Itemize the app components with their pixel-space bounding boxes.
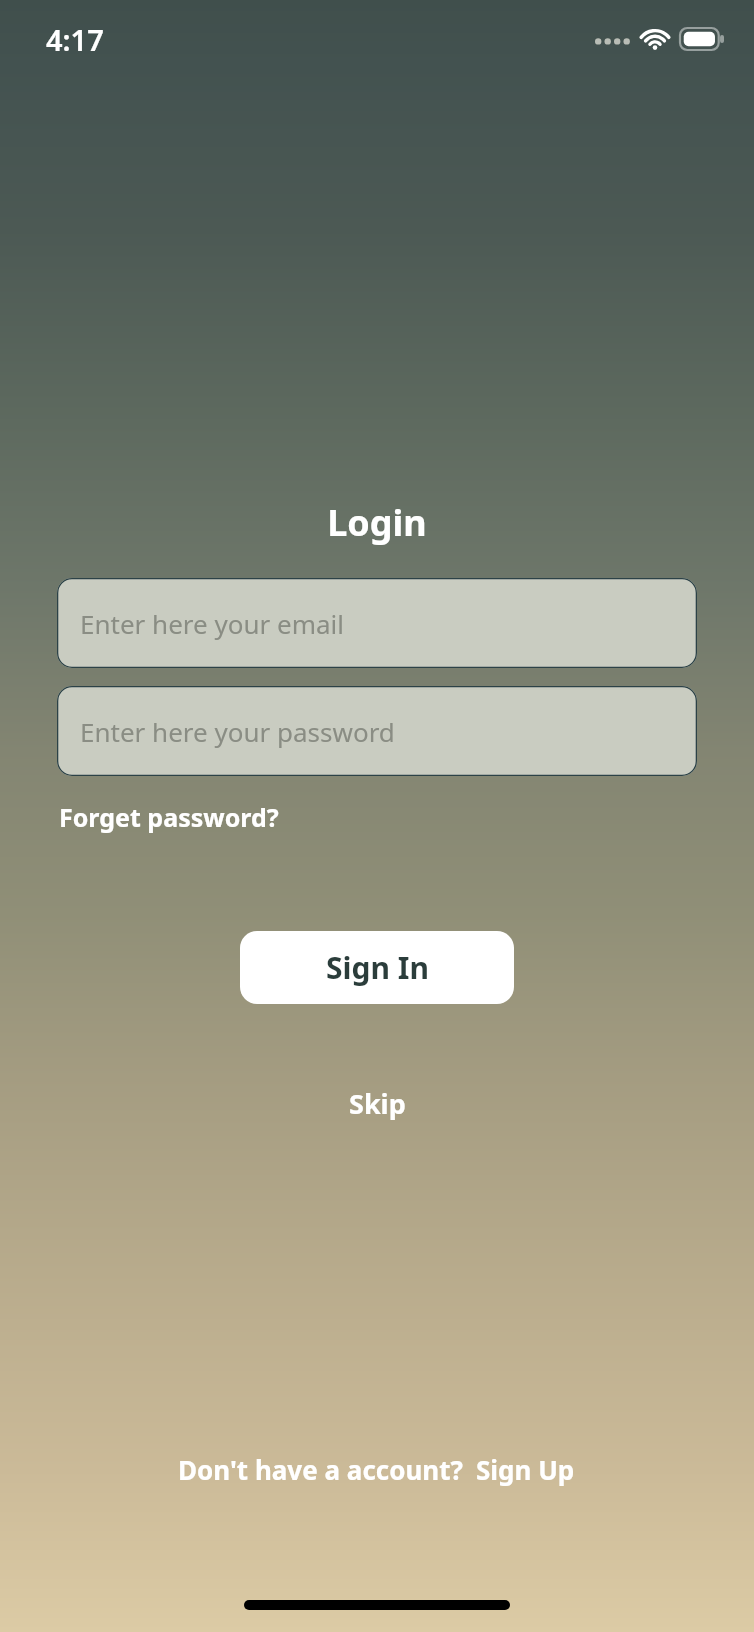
staticText: Forget password? [59, 800, 279, 834]
staticText: Don't have a account? [178, 1452, 463, 1487]
button[interactable]: Enter here your password [57, 686, 697, 776]
button[interactable]: Enter here your email [57, 578, 697, 668]
button[interactable]: Skip [335, 1079, 420, 1128]
button[interactable]: Sign Up [474, 1449, 577, 1490]
staticText: Enter here your password [80, 714, 395, 749]
staticText: Enter here your email [80, 606, 344, 641]
button[interactable]: Forget password? [57, 797, 281, 837]
staticText: Login [0, 498, 754, 547]
staticText: Sign Up [476, 1452, 575, 1487]
staticText: Skip [349, 1085, 406, 1122]
staticText: 4:17 [46, 20, 104, 59]
staticText: Sign In [326, 947, 429, 988]
button[interactable]: Sign In [240, 931, 514, 1004]
